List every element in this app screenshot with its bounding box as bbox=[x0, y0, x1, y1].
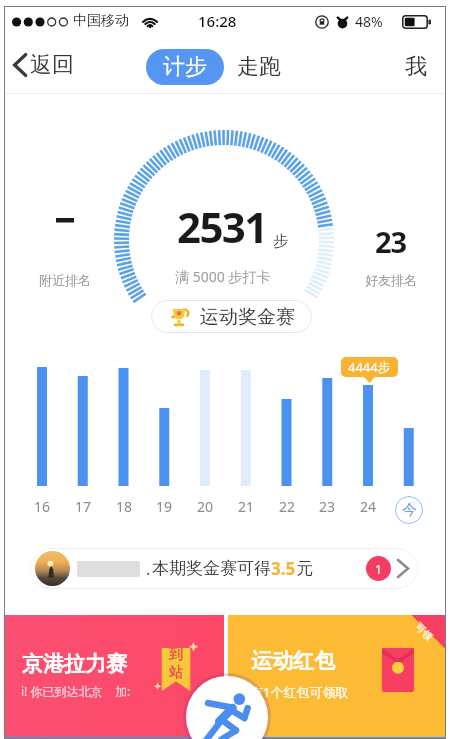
staticText: 21 bbox=[238, 497, 255, 516]
staticText: 23 bbox=[375, 222, 407, 261]
staticText: 附近排名 bbox=[39, 272, 91, 288]
staticText: 元 bbox=[296, 558, 313, 579]
staticText: 48% bbox=[355, 12, 383, 31]
button[interactable]: 我 bbox=[400, 49, 432, 85]
button[interactable]: 今 bbox=[395, 496, 423, 524]
staticText: 满 5000 步打卡 bbox=[175, 267, 271, 286]
staticText: 可领 bbox=[412, 620, 436, 643]
staticText: 22 bbox=[279, 497, 296, 516]
button[interactable]: 计步 bbox=[146, 49, 224, 85]
staticText: 步 bbox=[273, 232, 288, 251]
staticText: 4444步 bbox=[348, 358, 391, 376]
staticText: 返回 bbox=[30, 51, 74, 79]
staticText: 17 bbox=[75, 497, 92, 516]
staticText: 运动红包 bbox=[251, 648, 335, 674]
staticText: 走跑 bbox=[237, 53, 281, 81]
staticText: 20 bbox=[197, 497, 214, 516]
staticText: 3.5 bbox=[271, 557, 296, 580]
staticText: i! 你已到达北京 加: bbox=[21, 683, 131, 699]
staticText: 19 bbox=[156, 497, 173, 516]
staticText: 中国移动 bbox=[73, 12, 129, 30]
button[interactable]: 运动红包 bbox=[228, 615, 445, 737]
staticText: 今 bbox=[402, 501, 417, 520]
button[interactable]: 运动奖金赛 bbox=[151, 300, 312, 333]
staticText: 23 bbox=[319, 497, 336, 516]
staticText: 运动奖金赛 bbox=[200, 305, 295, 329]
staticText: 2531 bbox=[177, 198, 267, 255]
staticText: 本期奖金赛可得 bbox=[152, 558, 271, 579]
button[interactable]: 返回 bbox=[8, 41, 78, 89]
staticText: 我 bbox=[405, 53, 427, 81]
staticText: 计步 bbox=[163, 53, 207, 81]
button[interactable]: 京港拉力赛 bbox=[5, 615, 224, 737]
button[interactable]: 走跑 bbox=[232, 49, 286, 85]
staticText: 京港拉力赛 bbox=[22, 651, 127, 677]
staticText: 到 bbox=[169, 646, 183, 664]
staticText: 18 bbox=[116, 497, 133, 516]
staticText: 1 bbox=[375, 561, 382, 577]
button[interactable]: Start run bbox=[186, 676, 268, 739]
staticText: 16 bbox=[34, 497, 51, 516]
staticText: . bbox=[146, 558, 151, 580]
staticText: 站 bbox=[169, 664, 183, 682]
button[interactable]: . bbox=[30, 548, 418, 589]
staticText: 好友排名 bbox=[365, 272, 417, 288]
staticText: 16:28 bbox=[198, 11, 237, 31]
staticText: 24 bbox=[360, 497, 377, 516]
staticText: 有1个红包可领取 bbox=[250, 683, 349, 701]
